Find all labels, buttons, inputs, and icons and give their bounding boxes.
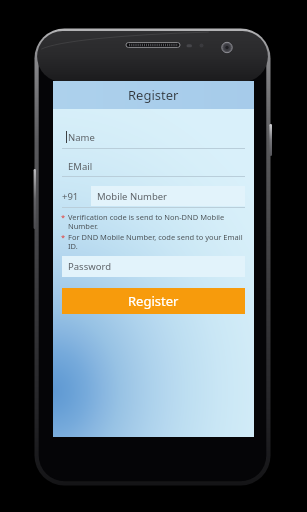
staticText: Mobile Number	[97, 190, 168, 203]
button[interactable]: EMail	[62, 156, 245, 176]
button[interactable]: +91	[62, 186, 245, 206]
staticText: Verification code is send to Non-DND Mob…	[68, 212, 246, 232]
staticText: +91	[62, 190, 79, 203]
staticText: For DND Mobile Number, code send to your…	[68, 232, 246, 252]
staticText: Password	[68, 260, 111, 273]
button[interactable]: Name	[62, 126, 245, 148]
button[interactable]: Password	[62, 256, 245, 277]
staticText: *	[61, 232, 68, 242]
staticText: Name	[68, 131, 95, 144]
button[interactable]: Register	[62, 288, 245, 314]
staticText: EMail	[68, 160, 93, 173]
staticText: *	[61, 212, 68, 222]
staticText: Register	[128, 292, 179, 310]
staticText: Register	[128, 86, 179, 104]
